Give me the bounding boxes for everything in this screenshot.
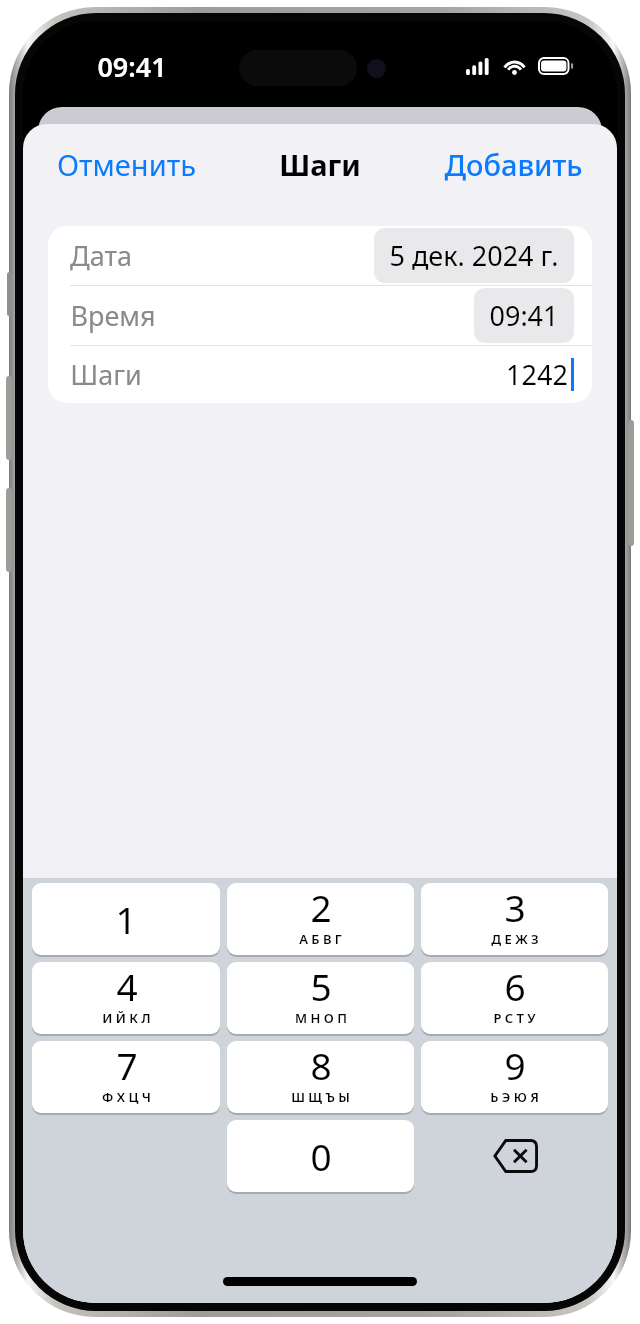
- button[interactable]: 5: [227, 962, 414, 1034]
- button[interactable]: Отменить: [49, 137, 204, 192]
- button[interactable]: 9: [421, 1041, 608, 1113]
- staticText: Отменить: [57, 145, 196, 184]
- staticText: Добавить: [444, 145, 583, 184]
- staticText: А Б В Г: [299, 930, 342, 948]
- button[interactable]: Добавить: [436, 137, 591, 192]
- staticText: 7: [116, 1041, 138, 1090]
- button[interactable]: 09:41: [474, 288, 574, 343]
- staticText: 5 дек. 2024 г.: [389, 237, 559, 274]
- staticText: 6: [504, 962, 526, 1011]
- button[interactable]: Время: [48, 286, 592, 345]
- staticText: 09:41: [489, 297, 559, 334]
- staticText: 1242: [506, 356, 568, 393]
- staticText: М Н О П: [295, 1009, 347, 1027]
- button[interactable]: 0: [227, 1120, 414, 1192]
- staticText: 4: [116, 962, 138, 1011]
- staticText: 2: [310, 883, 332, 932]
- button[interactable]: 2: [227, 883, 414, 955]
- staticText: Ш Щ Ъ Ы: [291, 1088, 350, 1106]
- staticText: 09:41: [97, 48, 167, 85]
- staticText: Время: [70, 297, 156, 334]
- staticText: И Й К Л: [102, 1009, 151, 1027]
- staticText: 9: [504, 1041, 526, 1090]
- staticText: Р С Т У: [493, 1009, 536, 1027]
- staticText: Ь Э Ю Я: [490, 1088, 539, 1106]
- staticText: Шаги: [279, 145, 361, 184]
- staticText: Ф Х Ц Ч: [102, 1088, 151, 1106]
- staticText: 0: [310, 1131, 332, 1181]
- button[interactable]: 6: [421, 962, 608, 1034]
- button[interactable]: 5 дек. 2024 г.: [374, 228, 574, 283]
- staticText: Дата: [70, 237, 132, 274]
- button[interactable]: Шаги: [48, 346, 592, 403]
- button[interactable]: Дата: [48, 226, 592, 285]
- button[interactable]: 3: [421, 883, 608, 955]
- staticText: Шаги: [70, 356, 142, 393]
- button[interactable]: Удалить: [421, 1120, 608, 1192]
- staticText: Д Е Ж З: [491, 930, 539, 948]
- staticText: 5: [310, 962, 332, 1011]
- button[interactable]: 7: [32, 1041, 220, 1113]
- button[interactable]: 4: [32, 962, 220, 1034]
- button[interactable]: 8: [227, 1041, 414, 1113]
- button[interactable]: 1: [32, 883, 220, 955]
- staticText: 1: [115, 894, 137, 944]
- staticText: 3: [504, 883, 526, 932]
- staticText: 8: [310, 1041, 332, 1090]
